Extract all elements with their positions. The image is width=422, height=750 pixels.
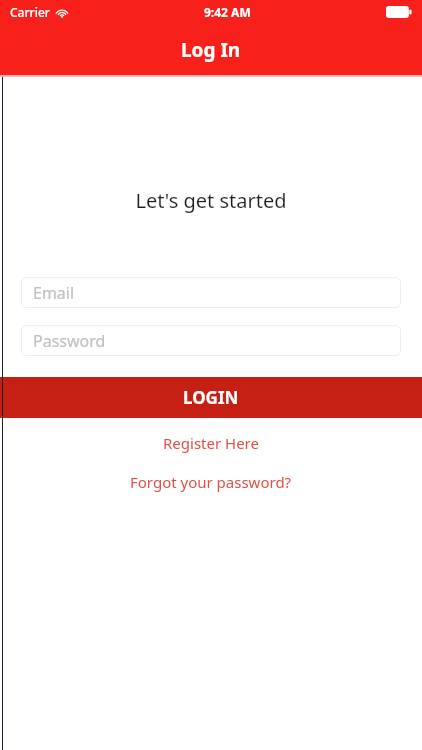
staticText: Password [33, 330, 106, 352]
staticText: LOGIN [183, 386, 239, 409]
staticText: Register Here [163, 433, 259, 453]
button[interactable]: LOGIN [0, 377, 422, 418]
button[interactable]: Password [21, 325, 401, 356]
button[interactable]: Email [21, 277, 401, 308]
button[interactable]: Register Here [0, 430, 422, 456]
staticText: Carrier [10, 4, 50, 20]
staticText: Let's get started [135, 187, 287, 214]
button[interactable]: Forgot your password? [0, 469, 422, 495]
staticText: Forgot your password? [130, 472, 292, 492]
staticText: 9:42 AM [204, 4, 251, 20]
staticText: Log In [181, 37, 241, 63]
staticText: Email [33, 282, 75, 304]
